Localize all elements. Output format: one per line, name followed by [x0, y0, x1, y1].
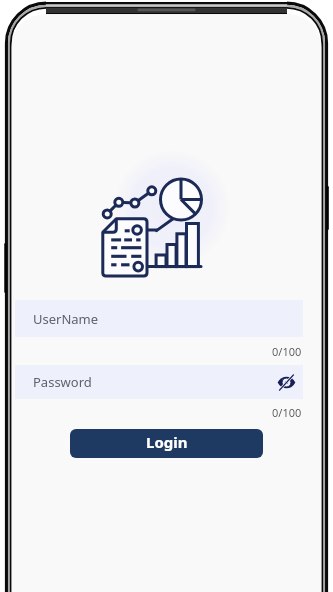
staticText: 0/100 [272, 344, 302, 359]
staticText: 0/100 [272, 405, 302, 420]
staticText: Login [146, 432, 188, 452]
staticText: UserName [33, 310, 99, 328]
staticText: Password [33, 373, 92, 391]
button[interactable]: Show password [274, 370, 298, 394]
button[interactable]: Login [70, 429, 263, 458]
button[interactable]: Password [15, 365, 303, 399]
button[interactable]: UserName [15, 300, 303, 337]
